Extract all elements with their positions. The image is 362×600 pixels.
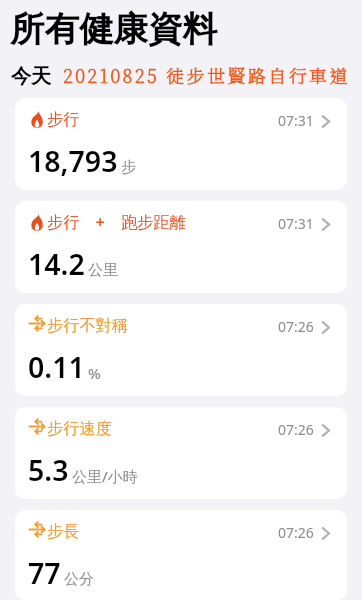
- button[interactable]: 步行 + 跑步距離: [15, 201, 347, 293]
- staticText: 07:31: [278, 214, 314, 233]
- staticText: 公分: [64, 570, 94, 589]
- staticText: 18,793: [28, 142, 118, 181]
- button[interactable]: 步行: [15, 98, 347, 190]
- staticText: 步行不對稱: [47, 315, 128, 335]
- button[interactable]: 步長: [15, 510, 347, 600]
- staticText: 07:26: [278, 317, 314, 336]
- staticText: 步行速度: [47, 418, 112, 438]
- staticText: 公里: [88, 261, 118, 280]
- staticText: 步行 + 跑步距離: [47, 211, 186, 233]
- staticText: 5.3: [28, 451, 69, 490]
- staticText: 07:26: [278, 420, 314, 439]
- staticText: 14.2: [28, 245, 85, 284]
- staticText: 07:31: [278, 111, 314, 130]
- button[interactable]: 步行速度: [15, 407, 347, 499]
- staticText: 步長: [47, 521, 80, 541]
- staticText: 所有健康資料: [10, 8, 217, 51]
- staticText: 步行: [47, 109, 80, 129]
- staticText: 步: [121, 158, 136, 177]
- staticText: 今天: [11, 64, 51, 89]
- button[interactable]: 20210825 徒步世賢路自行車道: [63, 62, 350, 88]
- button[interactable]: 步行不對稱: [15, 304, 347, 396]
- staticText: 77: [28, 554, 61, 593]
- staticText: 0.11: [28, 348, 85, 387]
- staticText: %: [88, 363, 101, 383]
- staticText: 07:26: [278, 523, 314, 542]
- staticText: 公里/小時: [72, 466, 138, 486]
